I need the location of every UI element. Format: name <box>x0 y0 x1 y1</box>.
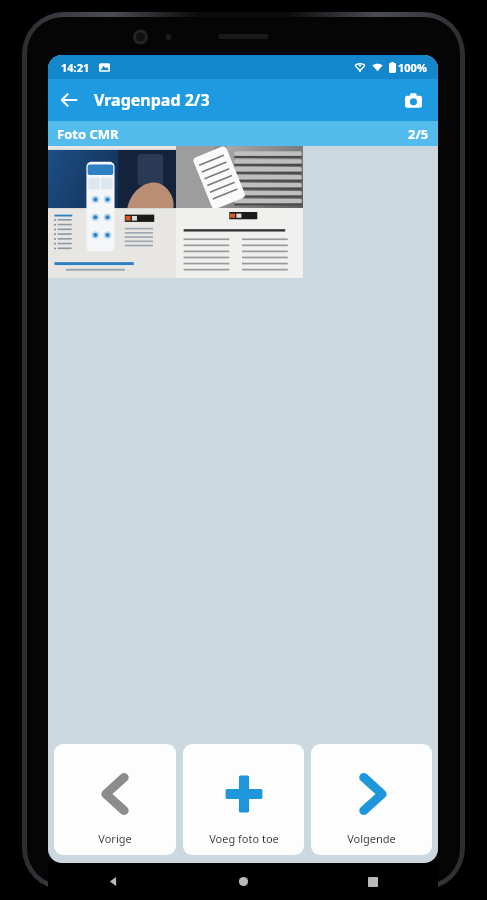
staticText: Foto CMR <box>57 125 119 143</box>
button[interactable]: Take photo <box>392 79 434 121</box>
staticText: 14:21 <box>61 60 90 75</box>
staticText: 100% <box>398 60 427 75</box>
staticText: Volgende <box>347 831 396 846</box>
staticText: Voeg foto toe <box>209 831 279 846</box>
button[interactable] <box>48 146 176 278</box>
button[interactable]: Back <box>48 79 90 121</box>
button[interactable]: Voeg foto toe <box>183 744 304 855</box>
staticText: 2/5 <box>408 125 429 143</box>
staticText: Vorige <box>98 831 132 846</box>
button[interactable] <box>176 146 303 278</box>
staticText: Vragenpad 2/3 <box>94 89 210 111</box>
button[interactable]: Home <box>178 863 308 900</box>
button[interactable]: Volgende <box>311 744 432 855</box>
button[interactable]: Foto CMR <box>48 121 438 146</box>
button[interactable]: Recent apps <box>308 863 438 900</box>
button[interactable]: Vorige <box>54 744 176 855</box>
button[interactable]: Back <box>48 863 178 900</box>
